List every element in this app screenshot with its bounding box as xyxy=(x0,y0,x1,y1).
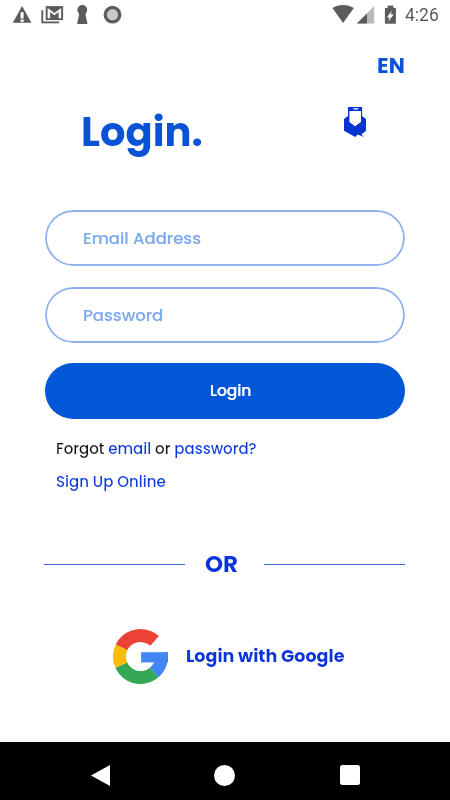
staticText: EN xyxy=(377,50,405,80)
staticText: Login with Google xyxy=(186,644,345,669)
button[interactable]: Back xyxy=(70,746,130,800)
staticText: Email Address xyxy=(83,227,201,250)
button[interactable]: Home xyxy=(194,746,254,800)
staticText: 4:26 xyxy=(405,5,439,26)
staticText: Login. xyxy=(81,104,203,160)
staticText: OR xyxy=(205,548,239,580)
button[interactable]: Forgot email or password? xyxy=(56,438,257,459)
button[interactable]: Sign Up Online xyxy=(56,471,166,492)
button[interactable]: Recent apps xyxy=(320,746,380,800)
staticText: Login xyxy=(210,380,252,402)
other: App logo xyxy=(344,107,366,137)
staticText: Sign Up Online xyxy=(56,471,166,492)
button[interactable]: Login xyxy=(45,363,405,419)
staticText: Forgot email or password? xyxy=(56,438,257,459)
staticText: Password xyxy=(83,304,164,327)
button[interactable]: Language EN xyxy=(371,47,411,83)
button[interactable]: Email Address xyxy=(45,210,405,266)
button[interactable]: Login with Google xyxy=(113,625,345,687)
button[interactable]: Password xyxy=(45,287,405,343)
